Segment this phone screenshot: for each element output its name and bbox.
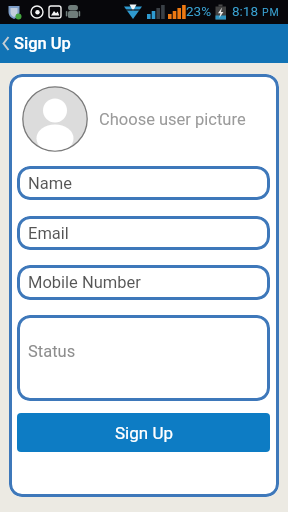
staticText: Sign Up — [115, 423, 173, 443]
staticText: PM — [262, 6, 280, 18]
button[interactable]: Mobile Number — [17, 265, 270, 300]
button[interactable]: Sign Up — [17, 413, 270, 452]
staticText: Name — [28, 174, 72, 193]
staticText: Status — [28, 342, 76, 361]
staticText: Sign Up — [14, 34, 71, 53]
staticText: 8:18 — [232, 3, 259, 19]
button[interactable] — [0, 24, 14, 63]
staticText: Choose user picture — [99, 110, 246, 129]
staticText: 23% — [186, 3, 212, 19]
button[interactable]: Status — [17, 315, 270, 401]
staticText: Email — [28, 224, 69, 243]
staticText: Mobile Number — [28, 273, 141, 292]
button[interactable]: Email — [17, 216, 270, 250]
button[interactable]: Name — [17, 166, 270, 200]
button[interactable]: Choose user picture — [22, 86, 252, 152]
